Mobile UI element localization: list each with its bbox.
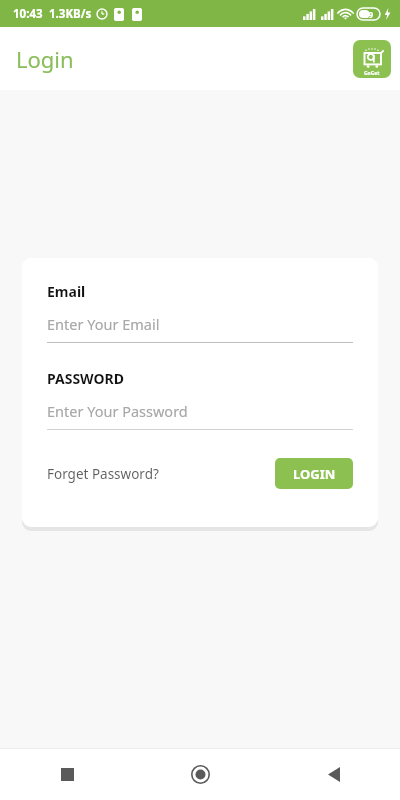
staticText: Enter Your Password xyxy=(47,401,188,421)
staticText: 1.3KB/s xyxy=(49,6,92,22)
button[interactable]: GoGet logo xyxy=(353,40,391,78)
button[interactable]: Home xyxy=(134,748,267,800)
staticText: 49 xyxy=(364,9,374,20)
button[interactable]: Back xyxy=(267,748,400,800)
staticText: Email xyxy=(47,282,86,301)
staticText: LOGIN xyxy=(293,465,336,483)
staticText: 10:43 xyxy=(13,6,43,22)
button[interactable]: Forget Password? xyxy=(47,465,159,483)
button[interactable]: LOGIN xyxy=(275,458,353,489)
staticText: PASSWORD xyxy=(47,369,125,388)
staticText: GoGet xyxy=(364,70,380,77)
button[interactable]: Enter Your Password xyxy=(47,401,353,430)
button[interactable]: Enter Your Email xyxy=(47,314,353,343)
button[interactable]: Recent apps xyxy=(0,748,134,800)
button[interactable]: Login xyxy=(16,44,74,74)
staticText: Enter Your Email xyxy=(47,314,160,334)
staticText: Login xyxy=(16,44,74,74)
staticText: Forget Password? xyxy=(47,465,159,483)
